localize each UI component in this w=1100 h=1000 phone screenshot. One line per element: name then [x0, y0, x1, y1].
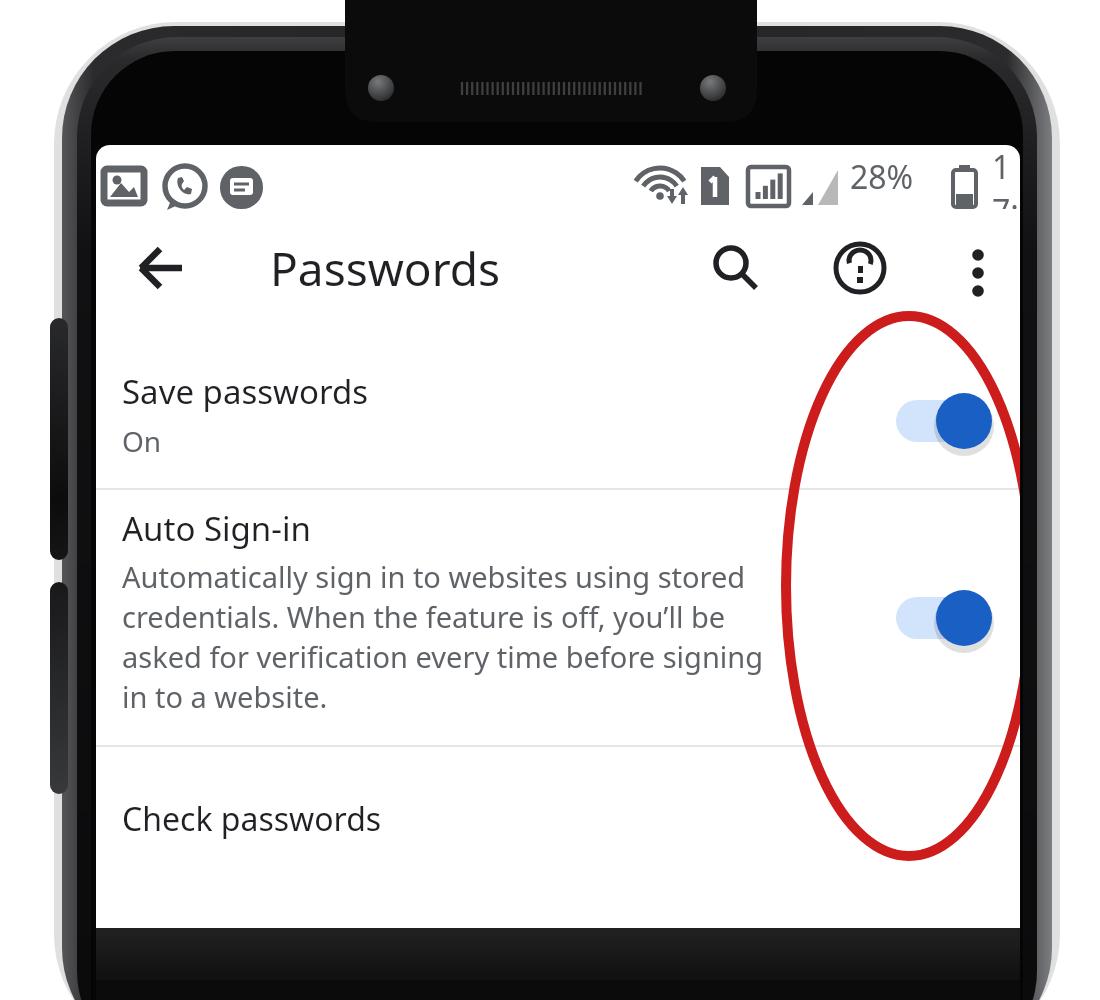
staticText: Automatically sign in to websites using …: [122, 557, 792, 717]
button[interactable]: Check passwords: [96, 747, 1020, 859]
staticText: 28%: [850, 155, 914, 199]
staticText: Check passwords: [122, 797, 382, 841]
button[interactable]: Toggle setting: [888, 389, 998, 453]
staticText: Auto Sign-in: [122, 506, 311, 551]
staticText: Save passwords: [122, 369, 368, 414]
button[interactable]: Toggle setting: [888, 586, 998, 650]
button[interactable]: More options: [940, 230, 1016, 306]
staticText: Passwords: [270, 237, 501, 300]
button[interactable]: Search: [698, 230, 774, 306]
button[interactable]: Auto Sign-in: [96, 490, 1020, 745]
button[interactable]: Save passwords: [96, 353, 1020, 488]
staticText: 17:21: [992, 145, 1020, 209]
button[interactable]: Back: [122, 230, 198, 306]
staticText: On: [122, 422, 162, 460]
button[interactable]: Help: [822, 230, 898, 306]
